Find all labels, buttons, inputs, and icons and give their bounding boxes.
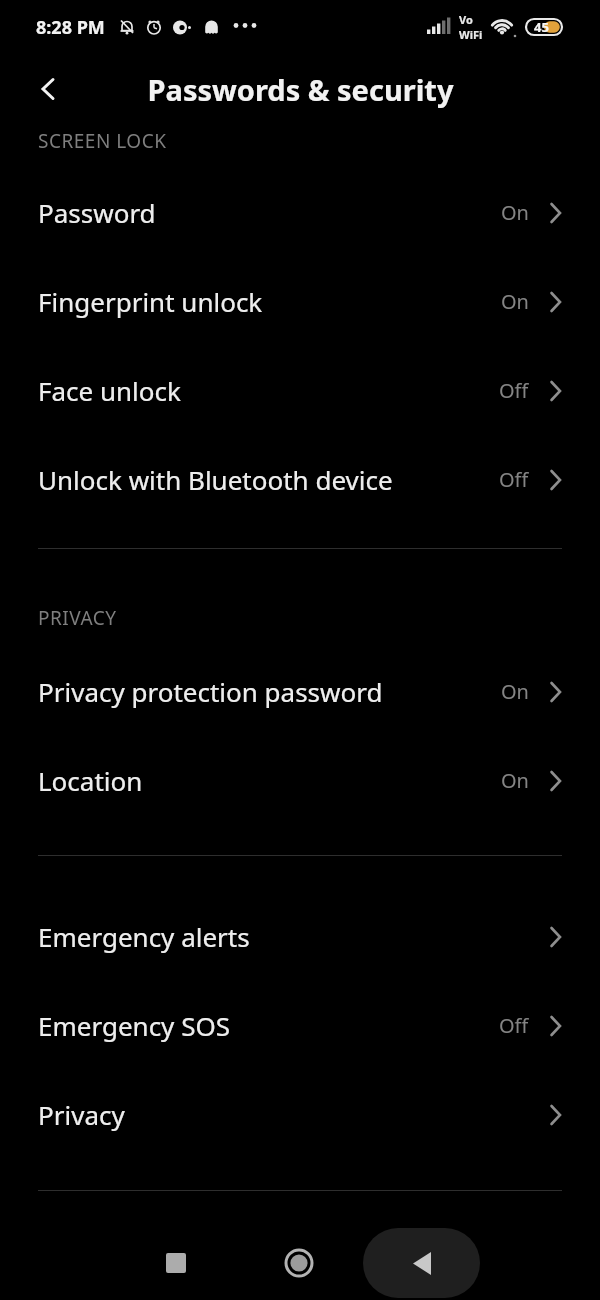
- staticText: Off: [499, 466, 529, 493]
- staticText: On: [501, 199, 529, 226]
- button[interactable]: Privacy protection password: [0, 647, 600, 736]
- staticText: Passwords & security: [147, 70, 454, 109]
- staticText: Privacy protection password: [38, 674, 383, 709]
- button[interactable]: Face unlock: [0, 346, 600, 435]
- staticText: Password: [38, 195, 156, 230]
- staticText: Off: [499, 377, 529, 404]
- button[interactable]: Emergency alerts: [0, 892, 600, 981]
- button[interactable]: [284, 1248, 314, 1278]
- button[interactable]: Fingerprint unlock: [0, 257, 600, 346]
- staticText: PRIVACY: [38, 605, 117, 631]
- staticText: SCREEN LOCK: [38, 128, 167, 154]
- button[interactable]: Emergency SOS: [0, 981, 600, 1070]
- staticText: Fingerprint unlock: [38, 284, 263, 319]
- staticText: Off: [499, 1012, 529, 1039]
- staticText: On: [501, 288, 529, 315]
- button[interactable]: [166, 1253, 186, 1273]
- button[interactable]: [363, 1228, 480, 1298]
- button[interactable]: Privacy: [0, 1070, 600, 1159]
- staticText: 8:28 PM: [36, 15, 105, 40]
- staticText: Emergency SOS: [38, 1008, 230, 1043]
- staticText: On: [501, 678, 529, 705]
- staticText: Vo: [459, 12, 473, 27]
- button[interactable]: Password: [0, 168, 600, 257]
- staticText: Face unlock: [38, 373, 181, 408]
- staticText: Emergency alerts: [38, 919, 250, 954]
- staticText: On: [501, 767, 529, 794]
- staticText: Location: [38, 763, 143, 798]
- staticText: WiFi: [459, 27, 483, 42]
- staticText: Privacy: [38, 1097, 125, 1132]
- button[interactable]: Unlock with Bluetooth device: [0, 435, 600, 524]
- staticText: 45: [534, 18, 549, 36]
- staticText: Unlock with Bluetooth device: [38, 462, 393, 497]
- button[interactable]: [26, 67, 70, 111]
- button[interactable]: Location: [0, 736, 600, 825]
